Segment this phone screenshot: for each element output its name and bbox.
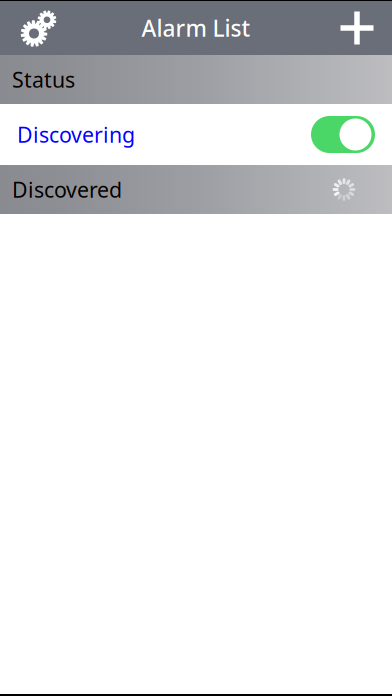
- staticText: Discovering: [17, 120, 135, 149]
- staticText: Status: [12, 65, 75, 94]
- button[interactable]: Add alarm: [331, 5, 383, 51]
- button[interactable]: Discovering: [0, 104, 392, 165]
- staticText: Alarm List: [141, 13, 250, 43]
- staticText: Discovered: [12, 175, 122, 204]
- button[interactable]: Settings: [13, 6, 65, 50]
